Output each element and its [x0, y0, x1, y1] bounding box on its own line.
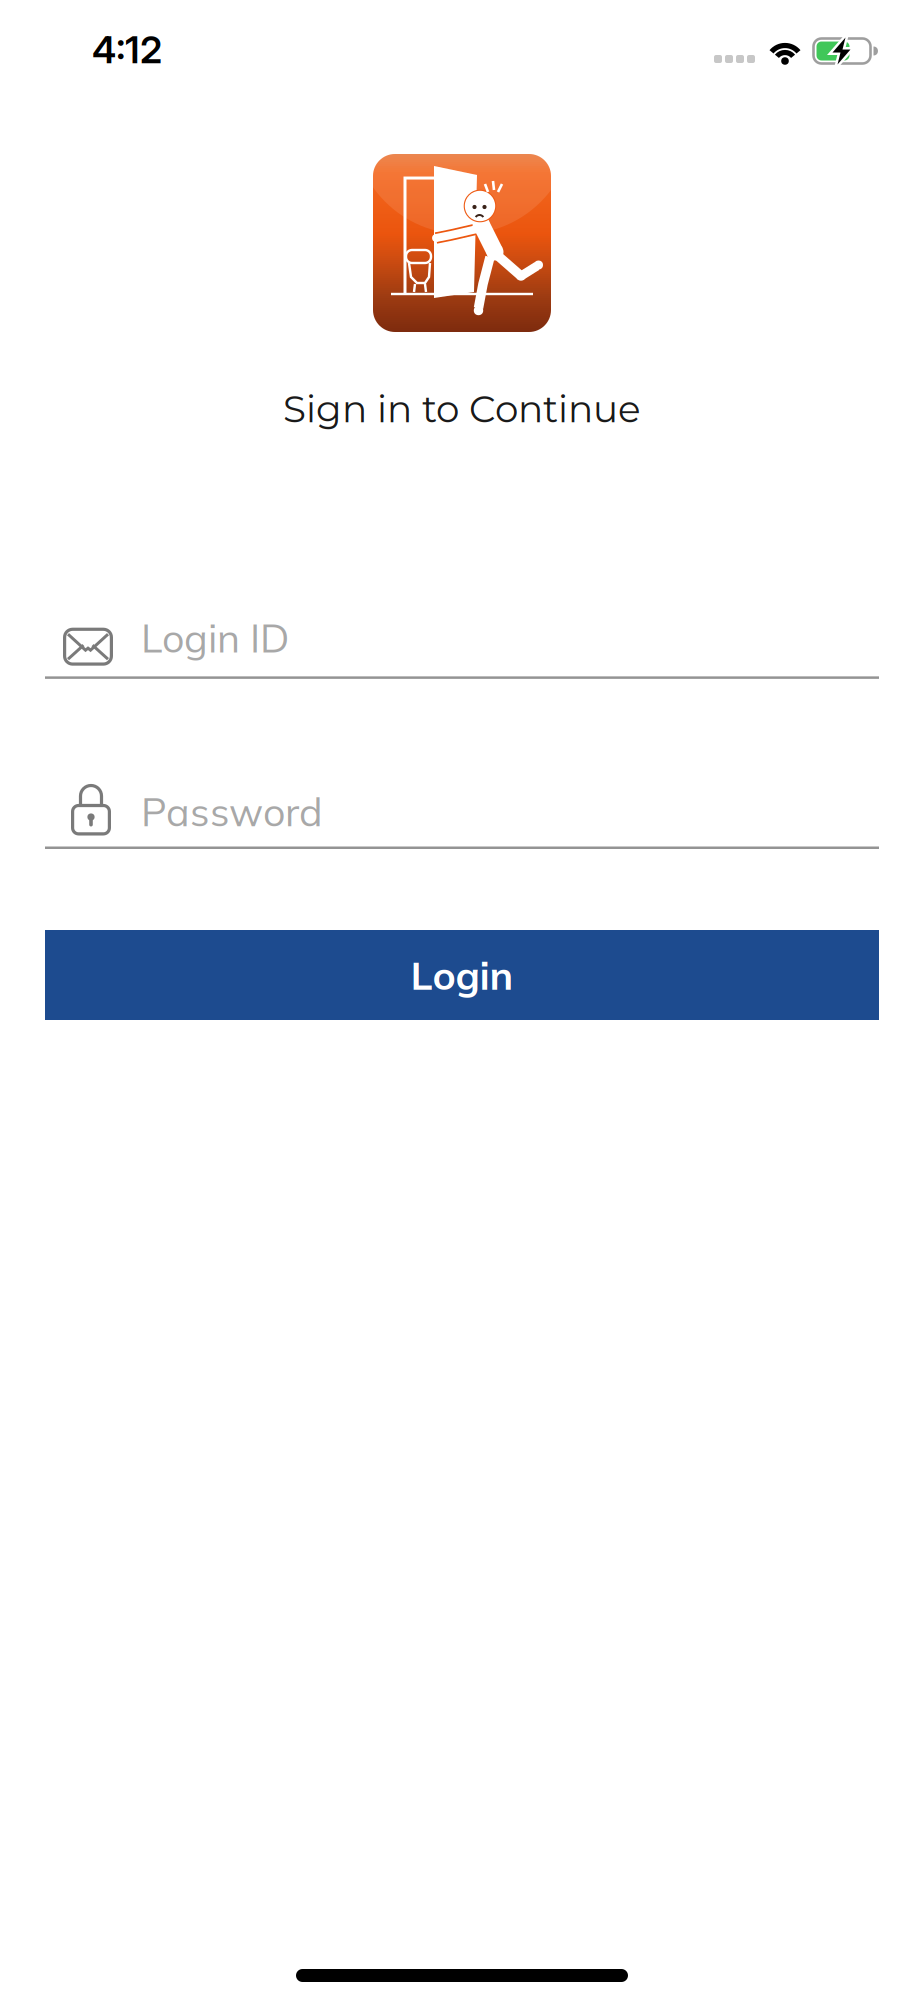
button[interactable]: Password: [45, 783, 879, 849]
staticText: Login ID: [141, 613, 289, 662]
staticText: Password: [141, 787, 323, 836]
staticText: 4:12: [92, 27, 162, 72]
button[interactable]: Login ID: [45, 619, 879, 679]
staticText: Login: [410, 950, 513, 1000]
button[interactable]: Login: [45, 930, 879, 1020]
staticText: Sign in to Continue: [283, 386, 641, 431]
